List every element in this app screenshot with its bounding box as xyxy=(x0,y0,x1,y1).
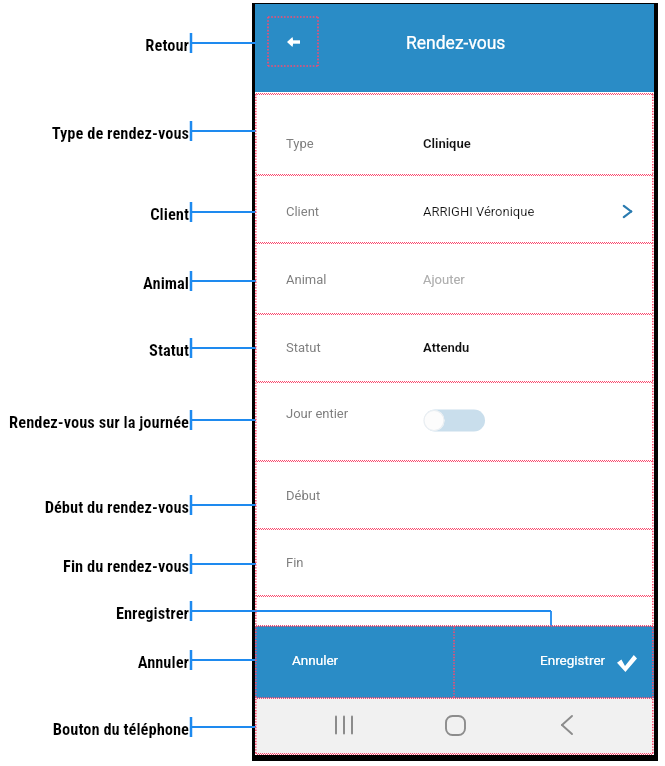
staticText: Annuler xyxy=(292,652,339,668)
staticText: Enregistrer xyxy=(540,652,606,668)
staticText: Enregistrer xyxy=(115,604,189,623)
staticText: Statut xyxy=(286,340,321,355)
button[interactable] xyxy=(255,175,654,243)
staticText: Fin xyxy=(286,555,304,570)
staticText: Retour xyxy=(145,36,189,55)
staticText: ARRIGHI Véronique xyxy=(423,204,535,219)
staticText: Clinique xyxy=(423,136,471,151)
button[interactable]: Applications récentes xyxy=(278,698,411,754)
staticText: Attendu xyxy=(423,340,470,355)
staticText: Animal xyxy=(143,274,189,293)
button[interactable] xyxy=(255,92,654,175)
button[interactable]: Annuler xyxy=(255,626,454,698)
staticText: Rendez-vous sur la journée xyxy=(9,413,189,432)
staticText: Type xyxy=(286,136,314,151)
button[interactable] xyxy=(255,314,654,382)
button[interactable] xyxy=(255,461,654,529)
staticText: Début xyxy=(286,488,321,503)
staticText: Fin du rendez-vous xyxy=(63,557,189,576)
staticText: Client xyxy=(286,204,320,219)
staticText: Annuler xyxy=(137,653,189,672)
staticText: Statut xyxy=(149,341,189,360)
staticText: Type de rendez-vous xyxy=(51,124,189,143)
button[interactable]: Accueil xyxy=(388,698,522,754)
staticText: Client xyxy=(150,205,189,224)
button[interactable] xyxy=(255,243,654,314)
staticText: Rendez-vous xyxy=(406,33,506,54)
button[interactable]: Retour xyxy=(522,698,654,754)
staticText: Début du rendez-vous xyxy=(44,498,189,517)
button[interactable] xyxy=(255,382,654,461)
button[interactable]: Enregistrer xyxy=(454,626,654,698)
staticText: Ajouter xyxy=(423,272,465,287)
staticText: Bouton du téléphone xyxy=(52,720,189,739)
staticText: Animal xyxy=(286,272,327,287)
button[interactable] xyxy=(255,529,654,596)
button[interactable]: Retour xyxy=(268,17,319,67)
staticText: Jour entier xyxy=(286,406,349,421)
